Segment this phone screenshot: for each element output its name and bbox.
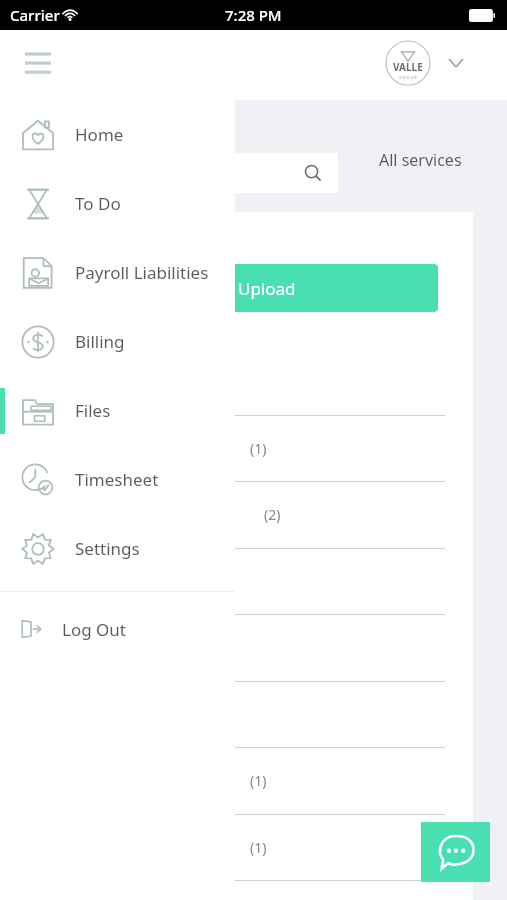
button[interactable]: To Do <box>0 169 235 238</box>
button[interactable]: Settings <box>0 514 235 583</box>
staticText: (1) <box>250 439 267 458</box>
staticText: (2) <box>264 505 281 524</box>
staticText: Billing <box>75 330 125 353</box>
staticText: Settings <box>75 537 140 560</box>
staticText: Home <box>75 123 124 146</box>
staticText: 7:28 PM <box>225 5 282 25</box>
staticText: Carrier <box>10 5 60 25</box>
button[interactable]: Expand account menu <box>443 50 469 76</box>
button[interactable]: Open navigation menu <box>22 48 54 80</box>
button[interactable]: Open chat <box>421 822 490 882</box>
staticText: VALLE <box>393 60 423 74</box>
button[interactable]: Home <box>0 100 235 169</box>
staticText: Payroll Liabilities <box>75 261 209 284</box>
button[interactable]: Payroll Liabilities <box>0 238 235 307</box>
button[interactable]: Log Out <box>0 592 235 666</box>
button[interactable]: Upload <box>150 264 438 312</box>
staticText: G R O U P <box>399 75 418 80</box>
staticText: Timesheet <box>75 468 159 491</box>
staticText: To Do <box>75 192 121 215</box>
button[interactable]: Files <box>0 376 235 445</box>
staticText: All services <box>379 149 462 171</box>
staticText: (1) <box>250 771 267 790</box>
button[interactable]: Timesheet <box>0 445 235 514</box>
button[interactable]: VALLE <box>385 40 431 86</box>
staticText: Upload <box>238 277 296 300</box>
staticText: Log Out <box>62 618 126 641</box>
button[interactable]: Search by title <box>130 153 338 193</box>
button[interactable]: All services <box>375 145 466 175</box>
staticText: (1) <box>250 838 267 857</box>
button[interactable]: Billing <box>0 307 235 376</box>
staticText: Files <box>75 399 111 422</box>
